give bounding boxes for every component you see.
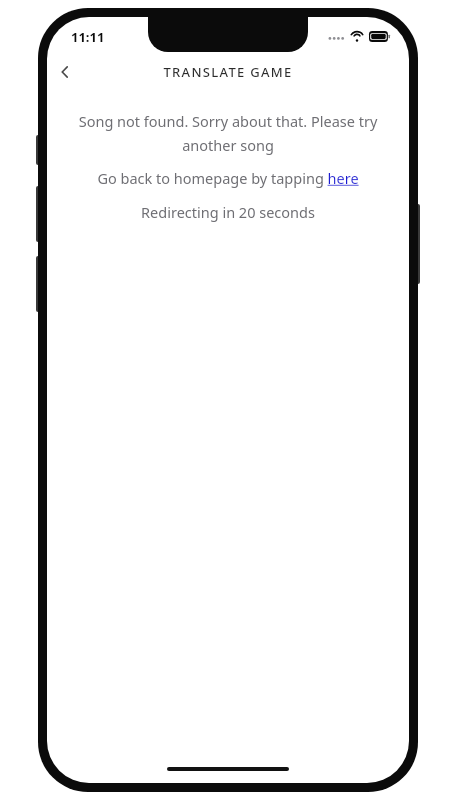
staticText: Go back to homepage by tapping here (97, 168, 359, 188)
button[interactable]: Back (47, 55, 83, 89)
staticText: Song not found. Sorry about that. Please… (65, 111, 391, 155)
staticText: 11:11 (71, 28, 105, 46)
button[interactable]: Go back to homepage by tapping here (47, 168, 409, 188)
staticText: TRANSLATE GAME (163, 63, 293, 81)
staticText: Redirecting in 20 seconds (47, 202, 409, 222)
